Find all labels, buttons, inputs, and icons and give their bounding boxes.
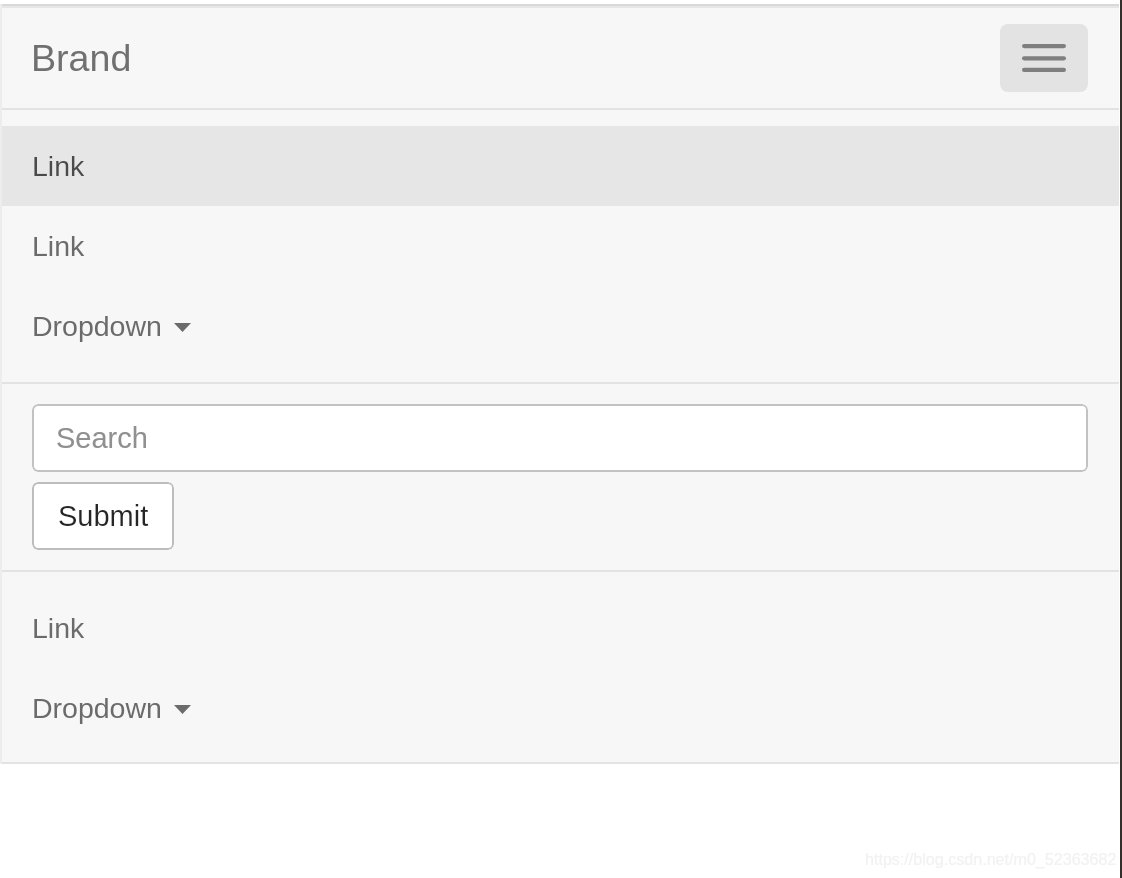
button[interactable]: Brand [0,8,144,108]
button[interactable]: Dropdown [0,286,1122,366]
button[interactable]: Link [0,588,1122,668]
staticText: Dropdown [32,692,162,724]
staticText: Link [32,150,85,182]
button[interactable]: Link [0,206,1122,286]
staticText: https://blog.csdn.net/m0_52363682 [865,850,1117,868]
staticText: Brand [31,37,132,79]
button[interactable]: Open navigation menu [1000,24,1088,92]
staticText: Link [32,230,85,262]
button[interactable]: Dropdown [0,668,1122,748]
button[interactable]: Link [0,126,1122,206]
button[interactable]: Search [32,404,1088,472]
staticText: Search [56,422,148,454]
button[interactable]: Submit [32,482,174,550]
staticText: Submit [58,500,149,532]
staticText: Link [32,612,85,644]
staticText: Dropdown [32,310,162,342]
